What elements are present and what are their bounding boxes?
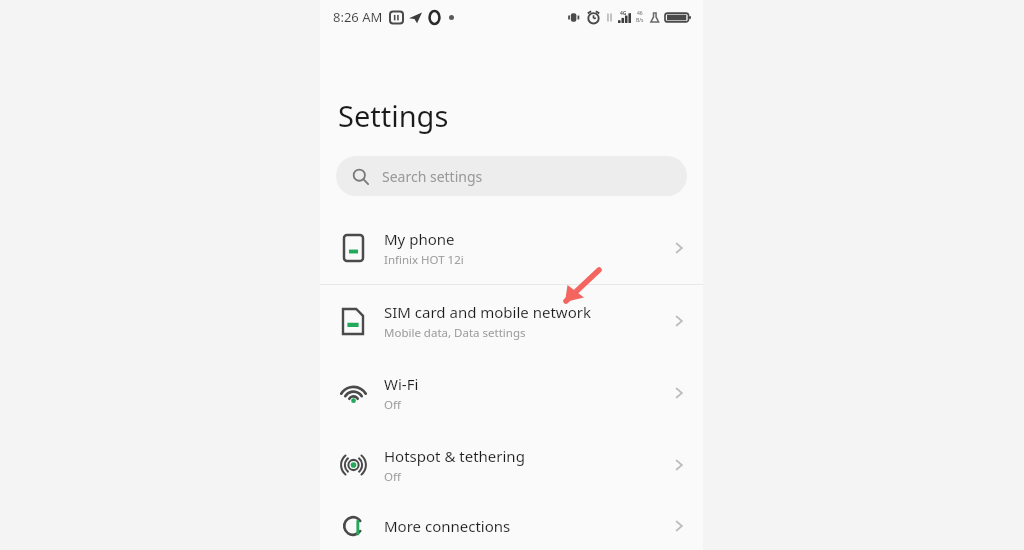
staticText: SIM card and mobile network (384, 302, 591, 322)
staticText: More connections (384, 516, 511, 536)
other: Open Wi-Fi (671, 385, 687, 401)
staticText: Search settings (382, 167, 483, 186)
staticText: Off (384, 397, 401, 413)
staticText: 46 (637, 10, 643, 17)
other: Open SIM card and mobile network (671, 313, 687, 329)
staticText: Hotspot & tethering (384, 446, 525, 466)
staticText: My phone (384, 229, 455, 249)
staticText: 8:26 AM (333, 8, 383, 26)
staticText: B/s (636, 17, 644, 24)
button[interactable]: My phone (320, 212, 703, 284)
button[interactable]: Hotspot & tethering (320, 429, 703, 501)
button[interactable]: Wi-Fi (320, 357, 703, 429)
staticText: Mobile data, Data settings (384, 325, 526, 341)
staticText: Off (384, 469, 401, 485)
other: Open More connections (671, 518, 687, 534)
button[interactable]: SIM card and mobile network (320, 285, 703, 357)
other: Open My phone (671, 240, 687, 256)
button[interactable]: More connections (320, 501, 703, 550)
other: Open Hotspot & tethering (671, 457, 687, 473)
button[interactable]: Search settings (336, 156, 687, 196)
staticText: Wi-Fi (384, 374, 419, 394)
staticText: 4G (620, 10, 627, 17)
staticText: Settings (338, 96, 449, 135)
staticText: Infinix HOT 12i (384, 252, 464, 268)
